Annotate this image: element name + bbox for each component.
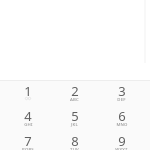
button[interactable]: Dial 6 — [98, 106, 145, 131]
staticText: 5 — [71, 107, 79, 125]
staticText: 4 — [24, 107, 32, 125]
staticText: MNO — [116, 121, 128, 127]
staticText: WXYZ — [115, 146, 128, 150]
staticText: 6 — [118, 107, 126, 125]
button[interactable]: Dial 8 — [51, 131, 98, 150]
staticText: 7 — [24, 132, 32, 150]
staticText: GHI — [24, 121, 33, 127]
button[interactable]: Dial 4 — [5, 106, 51, 131]
button[interactable]: Dial 1 — [5, 81, 51, 106]
staticText: TUV — [70, 146, 79, 150]
staticText: 1 — [24, 82, 32, 100]
button[interactable]: Dial 2 — [51, 81, 98, 106]
staticText: 2 — [71, 82, 79, 100]
staticText: 8 — [71, 132, 79, 150]
staticText: JKL — [71, 121, 78, 127]
staticText: 9 — [118, 132, 126, 150]
button[interactable]: Dial 7 — [5, 131, 51, 150]
button[interactable]: Dial 5 — [51, 106, 98, 131]
button[interactable]: Dial 9 — [98, 131, 145, 150]
staticText: ABC — [70, 96, 79, 102]
staticText: 3 — [118, 82, 126, 100]
staticText: DEF — [117, 96, 126, 102]
staticText: PQRS — [22, 146, 34, 150]
button[interactable]: Dial 3 — [98, 81, 145, 106]
